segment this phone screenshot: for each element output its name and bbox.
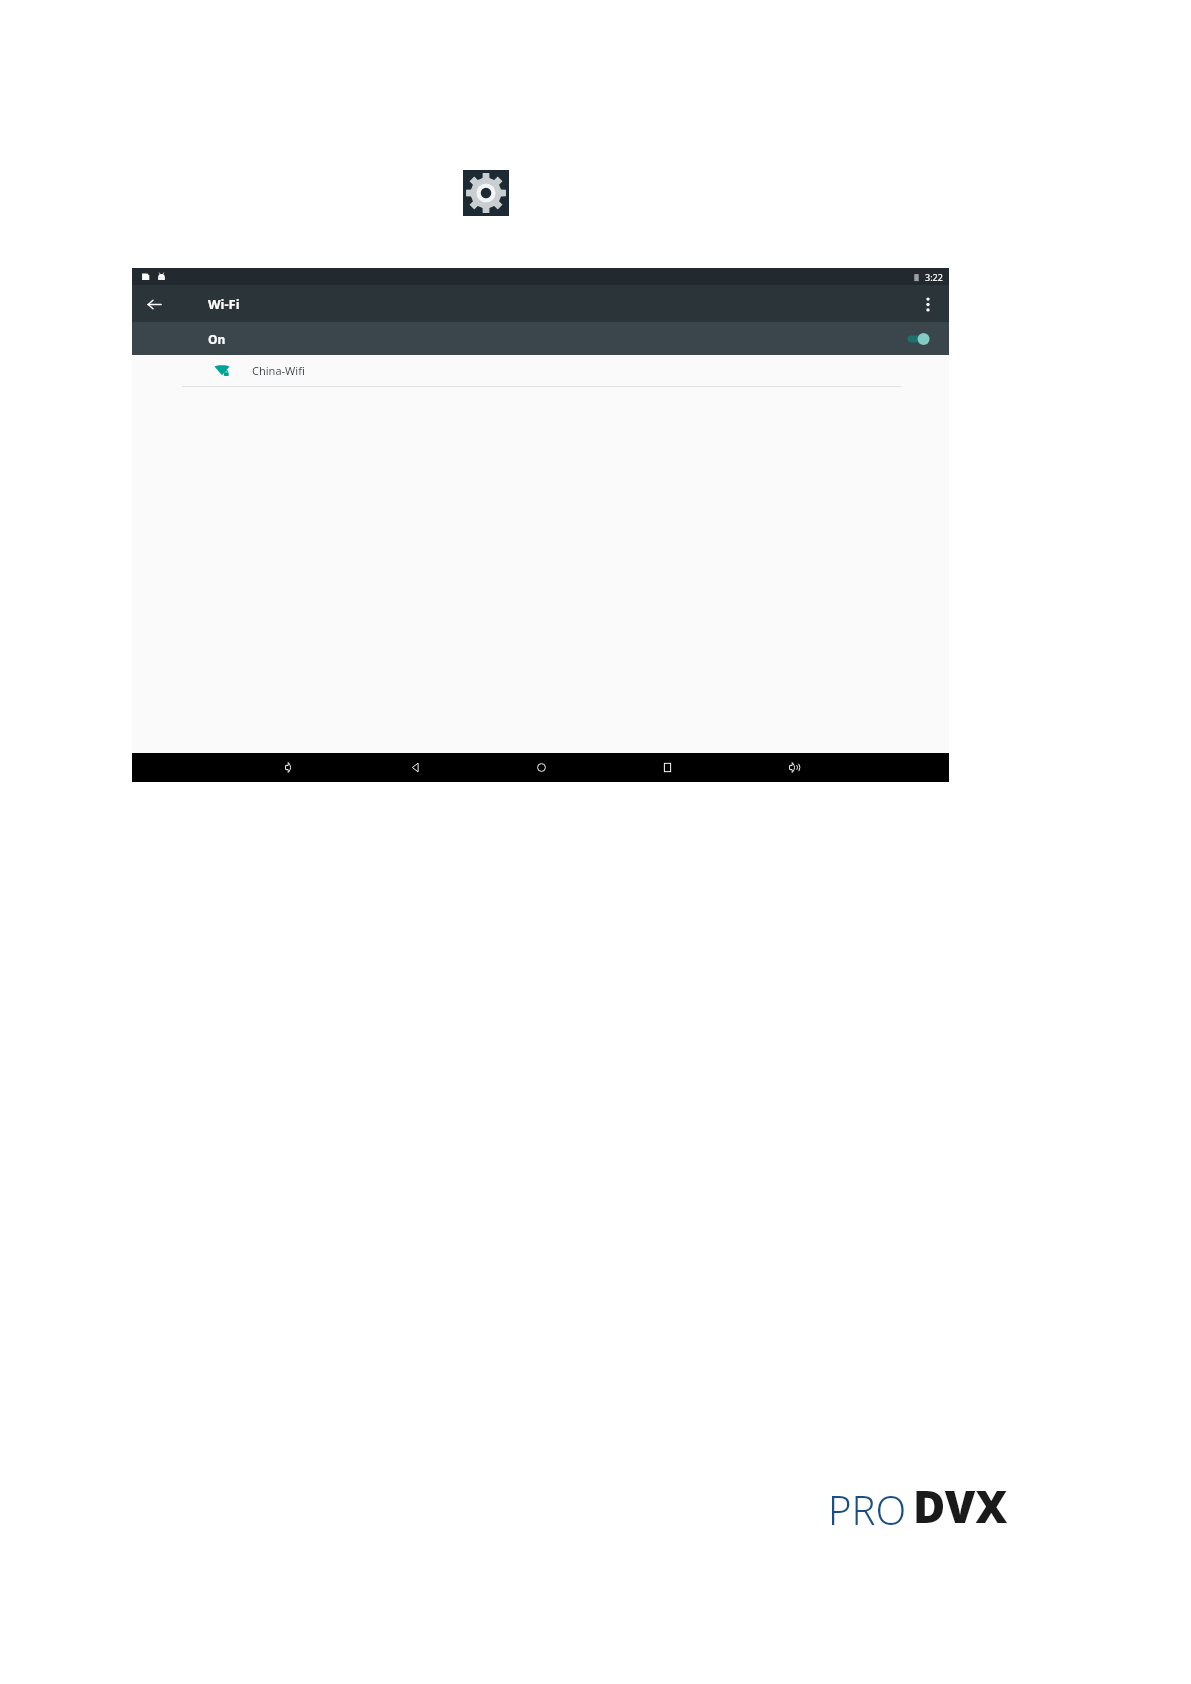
- button[interactable]: On: [132, 322, 949, 355]
- button[interactable]: Settings: [463, 170, 509, 216]
- button[interactable]: Wi-Fi on: [906, 329, 932, 349]
- button[interactable]: Recents: [650, 753, 684, 782]
- staticText: 3:22: [925, 271, 943, 283]
- button[interactable]: Volume up: [776, 753, 810, 782]
- staticText: China-Wifi: [252, 363, 305, 378]
- staticText: PRO: [828, 1482, 907, 1536]
- staticText: Wi-Fi: [208, 295, 240, 313]
- button[interactable]: China-Wifi: [132, 355, 949, 386]
- button[interactable]: Back: [398, 753, 432, 782]
- button[interactable]: More options: [915, 291, 941, 317]
- button[interactable]: Home: [524, 753, 558, 782]
- button[interactable]: Back: [140, 290, 168, 318]
- staticText: DVX: [913, 1476, 1008, 1536]
- staticText: On: [208, 331, 226, 347]
- button[interactable]: Volume down: [272, 753, 306, 782]
